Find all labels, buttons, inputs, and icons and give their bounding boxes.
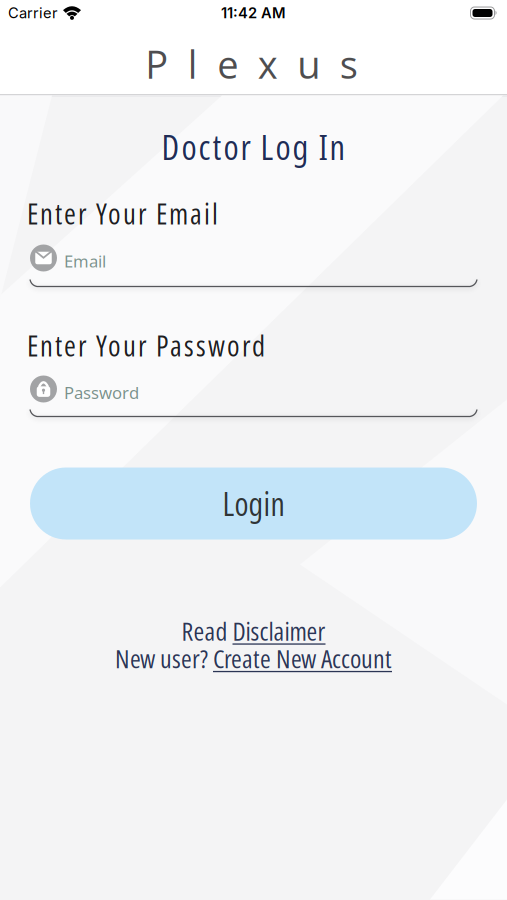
button[interactable]: Email <box>30 244 477 288</box>
button[interactable]: Login <box>30 467 477 539</box>
staticText: Login <box>222 482 284 525</box>
staticText: Password <box>64 381 139 404</box>
button[interactable]: Read Disclaimer <box>181 613 325 648</box>
staticText: Enter Your Password <box>27 326 265 365</box>
staticText: New user? Create New Account <box>115 640 392 676</box>
button[interactable]: Password <box>30 375 477 418</box>
staticText: Enter Your Email <box>27 194 218 233</box>
staticText: Email <box>64 250 106 272</box>
button[interactable]: New user? Create New Account <box>115 640 392 676</box>
staticText: Carrier <box>8 4 58 22</box>
staticText: 11:42 AM <box>221 4 286 22</box>
staticText: Plexus <box>145 38 358 90</box>
staticText: Doctor Log In <box>161 123 345 170</box>
staticText: Read Disclaimer <box>181 613 325 648</box>
